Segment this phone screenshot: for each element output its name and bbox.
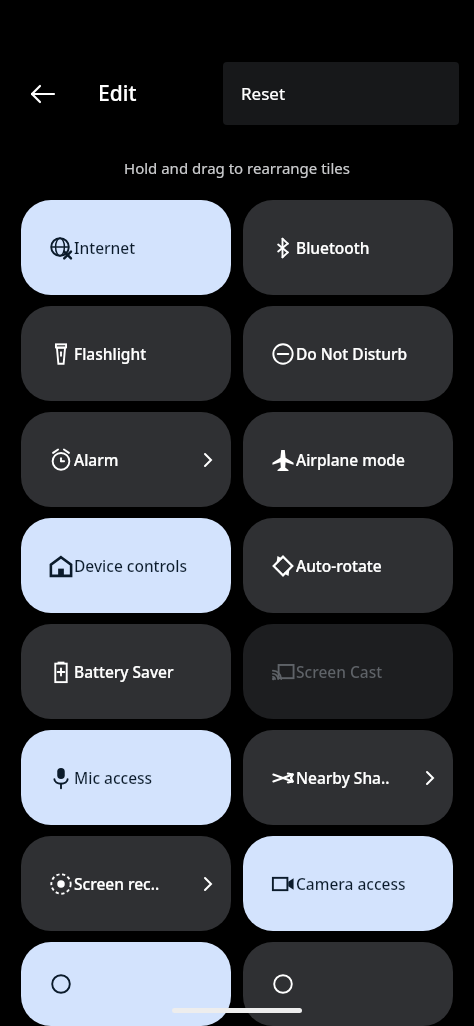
staticText: Internet — [74, 237, 136, 258]
staticText: Airplane mode — [296, 449, 405, 470]
button[interactable]: Back — [21, 72, 65, 116]
staticText: Flashlight — [74, 343, 147, 364]
button[interactable]: Nearby Sha.. — [243, 730, 453, 825]
staticText: Bluetooth — [296, 237, 370, 258]
button[interactable]: Screen rec.. — [21, 836, 231, 931]
staticText: Screen Cast — [296, 661, 383, 682]
button[interactable]: Do Not Disturb — [243, 306, 453, 401]
staticText: Hold and drag to rearrange tiles — [0, 158, 474, 178]
button[interactable]: Internet — [21, 200, 231, 295]
staticText: Edit — [98, 79, 137, 108]
button[interactable]: Battery Saver — [21, 624, 231, 719]
button[interactable] — [243, 942, 453, 1026]
staticText: Device controls — [74, 555, 187, 576]
button[interactable]: Alarm — [21, 412, 231, 507]
button[interactable]: Screen Cast — [243, 624, 453, 719]
staticText: Auto-rotate — [296, 555, 382, 576]
button[interactable]: Bluetooth — [243, 200, 453, 295]
button[interactable] — [21, 942, 231, 1026]
button[interactable]: Auto-rotate — [243, 518, 453, 613]
staticText: Alarm — [74, 449, 119, 470]
button[interactable]: Airplane mode — [243, 412, 453, 507]
staticText: Battery Saver — [74, 661, 174, 682]
staticText: Do Not Disturb — [296, 343, 408, 364]
button[interactable]: Device controls — [21, 518, 231, 613]
staticText: Nearby Sha.. — [296, 767, 390, 788]
button[interactable]: Reset — [223, 62, 459, 125]
staticText: Reset — [241, 82, 286, 105]
button[interactable]: Camera access — [243, 836, 453, 931]
button[interactable]: Flashlight — [21, 306, 231, 401]
staticText: Screen rec.. — [74, 873, 160, 894]
staticText: Mic access — [74, 767, 153, 788]
button[interactable]: Mic access — [21, 730, 231, 825]
staticText: Camera access — [296, 873, 406, 894]
